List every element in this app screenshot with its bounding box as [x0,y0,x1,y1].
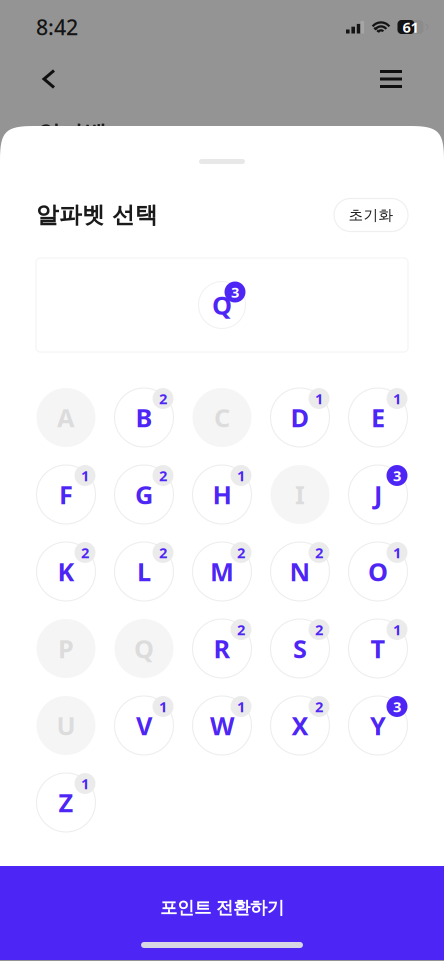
button[interactable]: D [270,388,329,447]
button[interactable]: K [36,542,95,601]
button[interactable]: I [270,465,329,524]
staticText: A [57,401,75,434]
button[interactable]: E [348,388,407,447]
staticText: 61 [402,17,418,37]
button[interactable]: 초기화 [334,198,408,231]
button[interactable]: R [192,619,251,678]
button[interactable]: G [114,465,173,524]
button[interactable]: A [36,388,95,447]
button[interactable]: W [192,696,251,755]
staticText: 2 [237,543,245,562]
button[interactable]: T [348,619,407,678]
button[interactable]: Menu [369,57,413,101]
staticText: J [374,478,382,511]
staticText: 1 [159,697,167,716]
staticText: V [136,709,152,742]
staticText: T [370,632,385,665]
button[interactable]: N [270,542,329,601]
staticText: W [210,709,234,742]
staticText: 1 [393,389,401,408]
staticText: Q [212,288,232,322]
staticText: K [57,555,74,588]
staticText: 1 [393,543,401,562]
button[interactable]: F [36,465,95,524]
button[interactable]: 포인트 전환하기 [0,866,444,960]
button[interactable]: Back [27,57,71,101]
button[interactable]: P [36,619,95,678]
staticText: 1 [237,466,245,485]
staticText: 1 [81,774,89,793]
staticText: U [56,709,75,742]
staticText: R [213,632,230,665]
staticText: D [290,401,309,434]
staticText: E [371,401,385,434]
staticText: 1 [315,389,323,408]
staticText: Y [370,709,386,742]
button[interactable]: B [114,388,173,447]
staticText: 2 [159,543,167,562]
staticText: N [289,555,310,588]
staticText: 2 [315,697,323,716]
button[interactable]: L [114,542,173,601]
staticText: 1 [237,697,245,716]
button[interactable]: S [270,619,329,678]
staticText: Z [58,786,73,819]
staticText: G [135,478,153,511]
staticText: B [135,401,152,434]
staticText: P [58,632,74,665]
staticText: 2 [237,620,245,639]
staticText: C [214,401,230,434]
staticText: 1 [81,466,89,485]
staticText: F [59,478,73,511]
staticText: 포인트 전환하기 [160,897,284,918]
staticText: 초기화 [348,206,393,224]
button[interactable]: O [348,542,407,601]
staticText: 1 [393,620,401,639]
staticText: 3 [393,466,401,485]
staticText: I [295,478,305,511]
staticText: 알파벳 선택 [36,201,158,229]
button[interactable]: C [192,388,251,447]
staticText: O [368,555,388,588]
staticText: 3 [393,697,401,716]
staticText: 2 [315,620,323,639]
staticText: 2 [159,389,167,408]
button[interactable]: Q [114,619,173,678]
staticText: 2 [315,543,323,562]
staticText: S [293,632,307,665]
button[interactable]: Y [348,696,407,755]
staticText: 3 [231,282,239,302]
button[interactable]: V [114,696,173,755]
staticText: X [291,709,308,742]
button[interactable]: M [192,542,251,601]
button[interactable]: H [192,465,251,524]
staticText: L [137,555,151,588]
staticText: 2 [81,543,89,562]
button[interactable]: U [36,696,95,755]
button[interactable]: J [348,465,407,524]
staticText: 2 [159,466,167,485]
staticText: M [210,555,234,588]
staticText: Q [134,632,154,665]
staticText: 8:42 [36,13,78,41]
staticText: 알파벳 [38,120,107,148]
button[interactable]: Z [36,773,95,832]
button[interactable]: X [270,696,329,755]
staticText: H [212,478,231,511]
